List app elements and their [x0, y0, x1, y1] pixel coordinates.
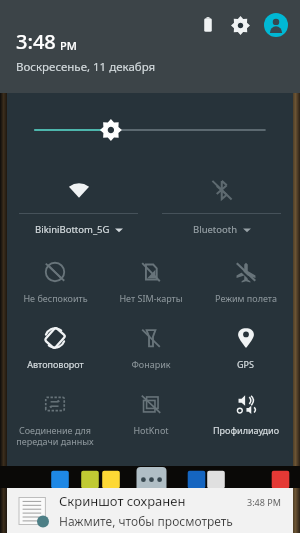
staticText: Воскресенье, 11 декабря	[16, 59, 156, 75]
staticText: Не беспокоить	[23, 292, 88, 304]
staticText: Нет SIM-карты	[119, 292, 183, 304]
button[interactable]: BikiniBottom_5G	[7, 173, 150, 236]
staticText: Скриншот сохранен	[59, 492, 186, 510]
button[interactable]: Автоповорот	[7, 324, 103, 370]
staticText: HotKnot	[133, 424, 169, 436]
button[interactable]: User profile	[262, 11, 290, 39]
button[interactable]: Battery	[196, 13, 220, 37]
button[interactable]: Профилиаудио	[198, 390, 293, 436]
staticText: 3:48 PM	[247, 496, 281, 508]
button[interactable]: Brightness	[7, 115, 293, 145]
staticText: PM	[60, 38, 77, 53]
button[interactable]: Скриншот сохранен	[7, 488, 293, 533]
button[interactable]: Фонарик	[103, 324, 198, 370]
staticText: Нажмите, чтобы просмотреть	[59, 513, 233, 529]
button[interactable]: GPS	[198, 324, 293, 370]
staticText: 3:48	[16, 28, 56, 55]
button[interactable]: Нет SIM-карты	[103, 258, 198, 304]
button[interactable]: Соединение для передачи данных	[7, 390, 103, 448]
button[interactable]: Режим полета	[198, 258, 293, 304]
staticText: BikiniBottom_5G	[35, 223, 110, 236]
staticText: Профилиаудио	[213, 424, 279, 436]
staticText: Bluetooth	[193, 223, 238, 236]
staticText: Фонарик	[131, 358, 171, 370]
staticText: Соединение для передачи данных	[16, 424, 94, 448]
button[interactable]: Не беспокоить	[7, 258, 103, 304]
button[interactable]: Settings	[227, 12, 253, 38]
staticText: GPS	[237, 358, 254, 370]
button[interactable]: HotKnot	[103, 390, 198, 436]
staticText: Режим полета	[215, 292, 277, 304]
button[interactable]: Bluetooth	[150, 173, 293, 236]
staticText: Автоповорот	[27, 358, 84, 370]
